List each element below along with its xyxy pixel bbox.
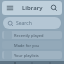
staticText: Recently played (14, 33, 44, 38)
staticText: Your playlists (14, 53, 39, 58)
staticText: Library (22, 4, 43, 12)
button[interactable]: Menu (2, 1, 62, 15)
button[interactable]: Library (47, 61, 53, 64)
button[interactable]: Home (12, 61, 18, 64)
button[interactable]: Menu (6, 4, 14, 12)
button[interactable]: Search (50, 4, 58, 12)
staticText: Search (16, 20, 32, 27)
button[interactable]: Made for you (2, 41, 62, 49)
button[interactable]: Your playlists (2, 51, 62, 59)
button[interactable]: Recently played (2, 31, 62, 39)
staticText: Made for you (14, 43, 40, 48)
button[interactable]: Search (3, 17, 61, 29)
button[interactable]: Search (29, 61, 35, 64)
